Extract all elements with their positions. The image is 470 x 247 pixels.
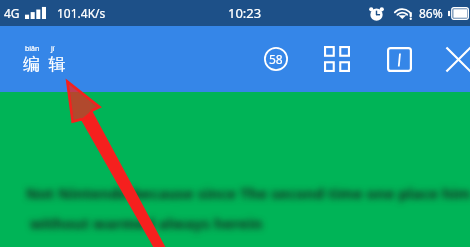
staticText: 10:23 bbox=[228, 4, 262, 22]
button[interactable]: Grid view bbox=[317, 39, 357, 79]
staticText: 58 bbox=[269, 51, 283, 67]
staticText: 86% bbox=[419, 5, 443, 21]
staticText: 4G bbox=[4, 5, 20, 21]
staticText: 101.4K/s bbox=[57, 5, 106, 21]
staticText: 编 辑 bbox=[23, 52, 66, 75]
staticText: jí bbox=[51, 44, 55, 54]
staticText: Not Nintendo because since The second ti… bbox=[26, 183, 470, 203]
button[interactable]: Single page view bbox=[379, 39, 419, 79]
staticText: biān bbox=[25, 44, 40, 54]
button[interactable]: Close bbox=[438, 39, 470, 79]
staticText: without warmed always herein bbox=[30, 213, 263, 233]
button[interactable]: Page count 58 bbox=[256, 39, 296, 79]
